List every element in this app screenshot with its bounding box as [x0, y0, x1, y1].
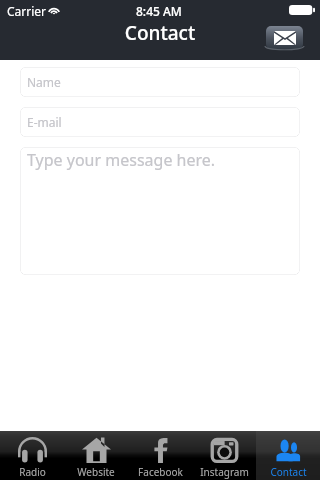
staticText: Name: [27, 74, 61, 90]
staticText: 8:45 AM: [136, 3, 182, 19]
staticText: Facebook: [138, 465, 183, 479]
staticText: Carrier: [7, 3, 47, 19]
staticText: Radio: [19, 465, 46, 479]
staticText: Instagram: [200, 465, 249, 479]
button[interactable]: Type your message here.: [20, 147, 300, 275]
button[interactable]: Contact: [256, 431, 320, 480]
staticText: Contact: [270, 465, 307, 479]
staticText: E-mail: [27, 114, 62, 130]
button[interactable]: Compose mail: [266, 26, 303, 49]
button[interactable]: Name: [20, 67, 300, 97]
button[interactable]: Website: [64, 431, 128, 480]
button[interactable]: Radio: [0, 431, 64, 480]
staticText: Type your message here.: [27, 149, 216, 171]
button[interactable]: Instagram: [192, 431, 256, 480]
staticText: Contact: [0, 20, 320, 46]
button[interactable]: Facebook: [128, 431, 192, 480]
button[interactable]: E-mail: [20, 107, 300, 137]
staticText: Website: [77, 465, 115, 479]
